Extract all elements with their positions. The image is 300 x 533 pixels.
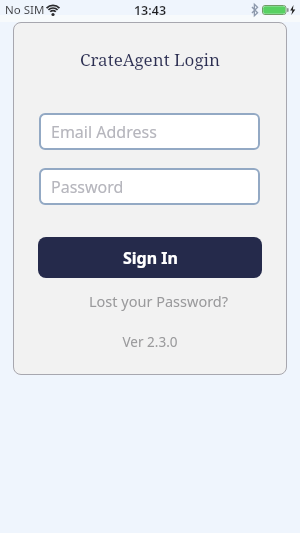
staticText: Password [51, 176, 124, 198]
staticText: Ver 2.3.0 [13, 333, 287, 351]
button[interactable]: Lost your Password? [13, 290, 287, 312]
staticText: Lost your Password? [89, 291, 229, 311]
button[interactable]: Password [39, 168, 260, 205]
button[interactable]: Email Address [39, 113, 260, 150]
staticText: Email Address [51, 121, 157, 143]
staticText: CrateAgent Login [13, 48, 287, 71]
staticText: 13:43 [0, 2, 300, 19]
staticText: No SIM [5, 2, 45, 18]
button[interactable]: Sign In [38, 237, 262, 278]
staticText: Sign In [123, 247, 178, 269]
